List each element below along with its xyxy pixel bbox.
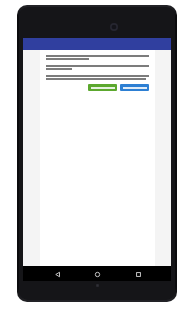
- button[interactable]: DOWNLOAD OALD10: [88, 84, 117, 91]
- button[interactable]: Back: [50, 267, 64, 281]
- button[interactable]: Recent apps: [131, 267, 145, 281]
- button[interactable]: RESTORE PURCHASE: [120, 84, 149, 91]
- button[interactable]: Home: [90, 267, 104, 281]
